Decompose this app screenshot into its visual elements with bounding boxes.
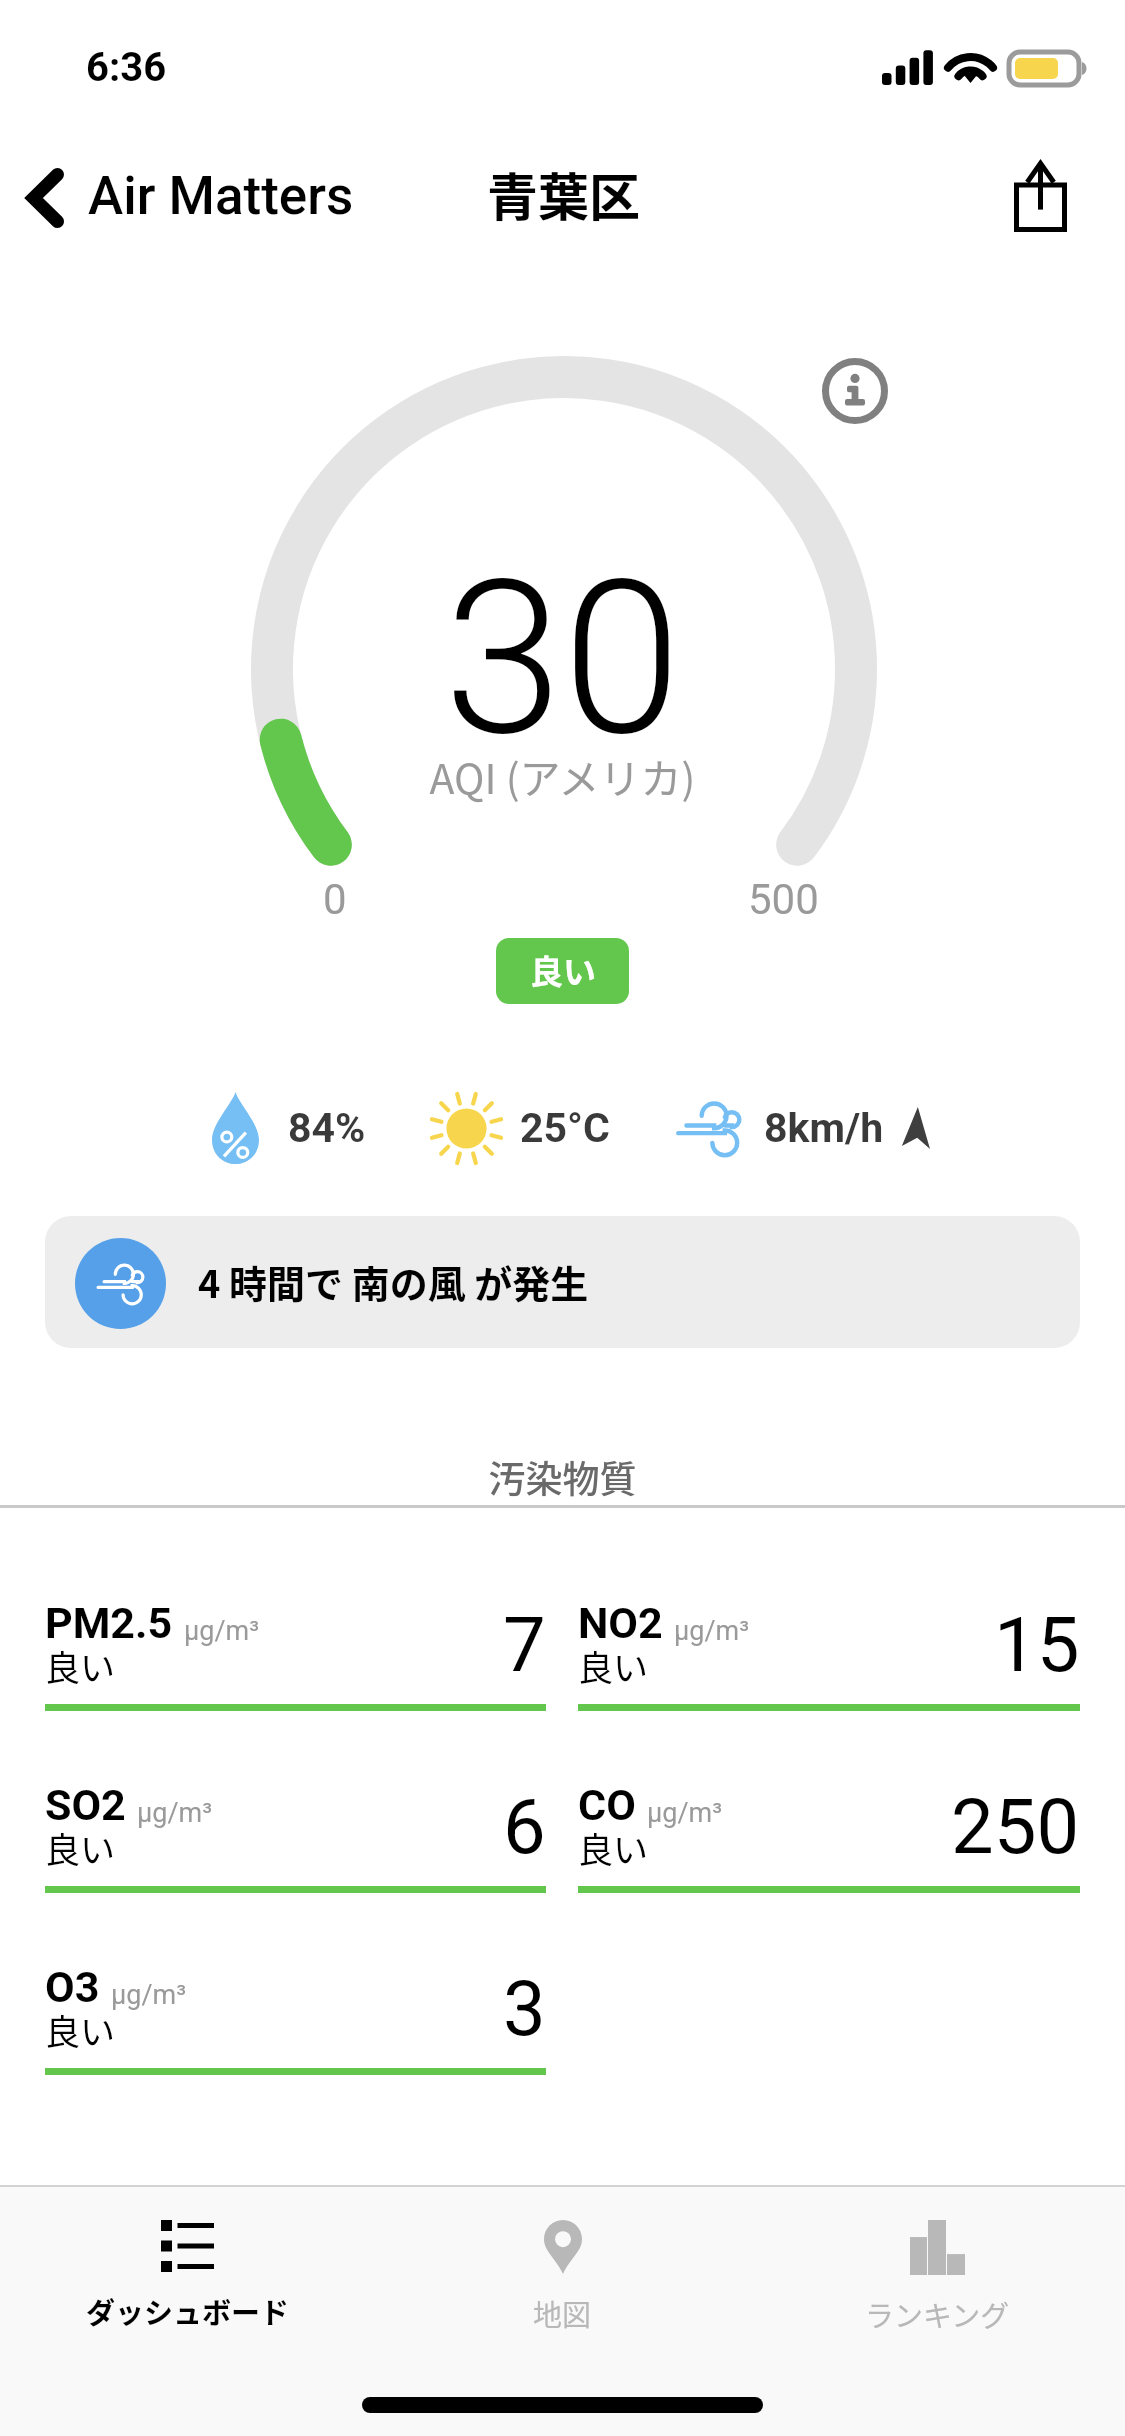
staticText: AQI (アメリカ) — [0, 746, 1125, 805]
staticText: 250 — [951, 1782, 1080, 1871]
staticText: 30 — [0, 533, 1125, 784]
staticText: 3 — [503, 1964, 546, 2053]
staticText: ダッシュボード — [86, 2290, 290, 2332]
staticText: μg/m³ — [137, 1797, 213, 1829]
staticText: 6 — [503, 1782, 546, 1871]
button[interactable]: 良い — [496, 938, 629, 1004]
button[interactable]: Air Matters — [8, 150, 368, 246]
button[interactable]: 地図 — [375, 2187, 750, 2334]
staticText: ランキング — [865, 2293, 1010, 2335]
staticText: 良い — [45, 2004, 116, 2055]
staticText: Air Matters — [88, 165, 354, 227]
staticText: μg/m³ — [674, 1615, 750, 1647]
staticText: 84% — [288, 1104, 366, 1152]
staticText: 0 — [323, 875, 347, 924]
staticText: 良い — [578, 1822, 649, 1873]
staticText: O3 — [45, 1962, 100, 2012]
staticText: 500 — [748, 875, 819, 924]
staticText: 15 — [994, 1600, 1080, 1689]
staticText: 8km/h — [764, 1104, 884, 1152]
button[interactable]: 4 時間で 南の風 が発生 — [45, 1216, 1080, 1348]
staticText: SO2 — [45, 1780, 126, 1830]
button[interactable]: O3 — [45, 1948, 546, 2075]
staticText: 良い — [45, 1640, 116, 1691]
staticText: 良い — [530, 946, 596, 994]
staticText: 地図 — [533, 2292, 592, 2334]
staticText: CO — [578, 1780, 636, 1830]
staticText: 良い — [45, 1822, 116, 1873]
button[interactable]: ランキング — [750, 2187, 1125, 2335]
button[interactable]: NO2 — [578, 1584, 1080, 1711]
staticText: μg/m³ — [184, 1615, 260, 1647]
button[interactable]: Share — [990, 140, 1090, 254]
staticText: NO2 — [578, 1598, 663, 1648]
staticText: 7 — [503, 1600, 546, 1689]
button[interactable]: Information — [822, 358, 888, 424]
staticText: 25°C — [520, 1104, 610, 1152]
staticText: 6:36 — [86, 44, 167, 91]
button[interactable]: SO2 — [45, 1766, 546, 1893]
staticText: 汚染物質 — [0, 1450, 1125, 1504]
staticText: 良い — [578, 1640, 649, 1691]
staticText: 青葉区 — [487, 157, 641, 231]
staticText: μg/m³ — [647, 1797, 723, 1829]
staticText: PM2.5 — [45, 1598, 173, 1648]
button[interactable]: ダッシュボード — [0, 2187, 375, 2332]
staticText: 4 時間で 南の風 が発生 — [198, 1254, 589, 1309]
staticText: μg/m³ — [111, 1979, 187, 2011]
button[interactable]: PM2.5 — [45, 1584, 546, 1711]
button[interactable]: CO — [578, 1766, 1080, 1893]
